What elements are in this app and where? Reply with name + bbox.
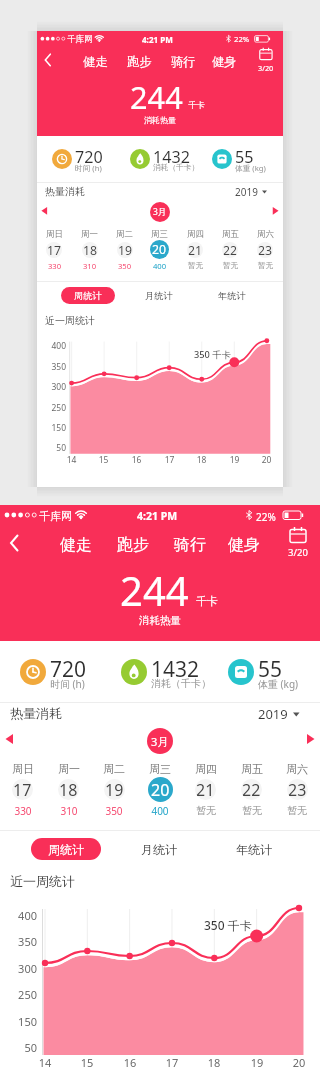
- button[interactable]: 年统计: [0, 505, 36, 520]
- button[interactable]: 21: [195, 779, 216, 800]
- staticText: 暂无: [248, 261, 283, 271]
- button[interactable]: 周统计: [61, 287, 115, 304]
- staticText: 时间 (h): [50, 677, 85, 691]
- staticText: 近一周统计: [10, 873, 75, 889]
- button[interactable]: 周统计: [31, 838, 101, 860]
- staticText: 周六: [248, 229, 283, 240]
- staticText: 15: [96, 454, 111, 466]
- staticText: 17: [13, 779, 32, 800]
- staticText: 消耗热量: [0, 614, 320, 627]
- staticText: 3/20: [258, 63, 274, 73]
- staticText: 14: [64, 454, 79, 466]
- staticText: 消耗（千卡）: [153, 163, 200, 173]
- button[interactable]: 20: [148, 777, 173, 802]
- button[interactable]: 21: [187, 242, 203, 258]
- button[interactable]: 23: [287, 779, 308, 800]
- staticText: 55: [258, 655, 283, 684]
- staticText: 250: [10, 987, 37, 1002]
- staticText: 400: [142, 261, 177, 271]
- staticText: 720: [75, 146, 103, 168]
- staticText: 3月: [153, 206, 167, 218]
- staticText: 330: [37, 261, 72, 271]
- button[interactable]: 22: [241, 779, 262, 800]
- staticText: 50: [10, 1040, 37, 1055]
- button[interactable]: 月统计: [37, 31, 65, 43]
- button[interactable]: 年统计: [37, 31, 65, 43]
- button[interactable]: 19: [117, 242, 133, 258]
- staticText: 244: [120, 563, 189, 617]
- button[interactable]: 23: [257, 242, 273, 258]
- staticText: 1432: [151, 655, 200, 684]
- button[interactable]: 跑步: [0, 505, 32, 525]
- button[interactable]: [272, 207, 279, 215]
- staticText: 暂无: [178, 261, 213, 271]
- staticText: 1432: [153, 146, 190, 168]
- button[interactable]: [289, 526, 307, 543]
- button[interactable]: [8, 534, 22, 552]
- staticText: 近一周统计: [45, 314, 95, 327]
- button[interactable]: 18: [58, 779, 79, 800]
- staticText: 17: [47, 242, 62, 258]
- button[interactable]: [43, 53, 54, 67]
- staticText: 18: [204, 1055, 224, 1070]
- button[interactable]: 19: [104, 779, 125, 800]
- staticText: 17: [162, 1055, 182, 1070]
- staticText: 20: [151, 779, 170, 801]
- staticText: 20: [259, 454, 274, 466]
- staticText: 20: [152, 241, 167, 258]
- staticText: 15: [77, 1055, 97, 1070]
- button[interactable]: 2019: [258, 705, 300, 723]
- staticText: 体重 (kg): [235, 163, 266, 174]
- staticText: 14: [35, 1055, 55, 1070]
- staticText: 50: [45, 442, 66, 454]
- button[interactable]: 健走: [0, 505, 32, 525]
- staticText: 周五: [213, 229, 248, 240]
- staticText: 310: [46, 804, 92, 818]
- button[interactable]: [306, 734, 315, 745]
- button[interactable]: [5, 734, 14, 745]
- staticText: 热量消耗: [45, 185, 85, 198]
- button[interactable]: 17: [12, 779, 33, 800]
- button[interactable]: 18: [82, 242, 98, 258]
- staticText: 周一: [46, 762, 92, 776]
- staticText: 暂无: [213, 261, 248, 271]
- button[interactable]: 健身: [37, 31, 62, 46]
- button[interactable]: [259, 47, 273, 60]
- staticText: 350: [91, 804, 137, 818]
- staticText: 周五: [229, 762, 275, 776]
- staticText: 21: [196, 779, 215, 800]
- staticText: 周一: [72, 229, 107, 240]
- staticText: 暂无: [183, 804, 229, 817]
- staticText: 周四: [178, 229, 213, 240]
- button[interactable]: 月统计: [0, 505, 36, 520]
- staticText: 21: [188, 242, 203, 258]
- button[interactable]: [41, 207, 48, 215]
- staticText: 18: [83, 242, 98, 258]
- button[interactable]: 健身: [0, 505, 32, 525]
- button[interactable]: 22: [222, 242, 238, 258]
- button[interactable]: 骑行: [37, 31, 62, 46]
- staticText: 22%: [256, 510, 276, 524]
- staticText: 千库网: [39, 509, 72, 523]
- staticText: 周三: [137, 762, 183, 776]
- button[interactable]: 3月: [147, 728, 173, 754]
- button[interactable]: 3月: [150, 202, 170, 222]
- staticText: 暂无: [274, 804, 320, 817]
- staticText: 350 千卡: [194, 348, 231, 361]
- button[interactable]: 20: [150, 240, 169, 259]
- staticText: 310: [72, 261, 107, 271]
- staticText: 300: [10, 961, 37, 976]
- button[interactable]: 2019: [235, 185, 267, 199]
- staticText: 18: [59, 779, 78, 800]
- button[interactable]: 跑步: [37, 31, 62, 46]
- button[interactable]: 17: [46, 242, 62, 258]
- staticText: 周日: [37, 229, 72, 240]
- button[interactable]: 骑行: [0, 505, 32, 525]
- staticText: 350: [10, 934, 37, 949]
- button[interactable]: 健走: [37, 31, 62, 46]
- staticText: 400: [45, 340, 66, 352]
- staticText: 22: [242, 779, 261, 800]
- staticText: 400: [10, 908, 37, 923]
- staticText: 150: [10, 1014, 37, 1029]
- staticText: 周二: [91, 762, 137, 776]
